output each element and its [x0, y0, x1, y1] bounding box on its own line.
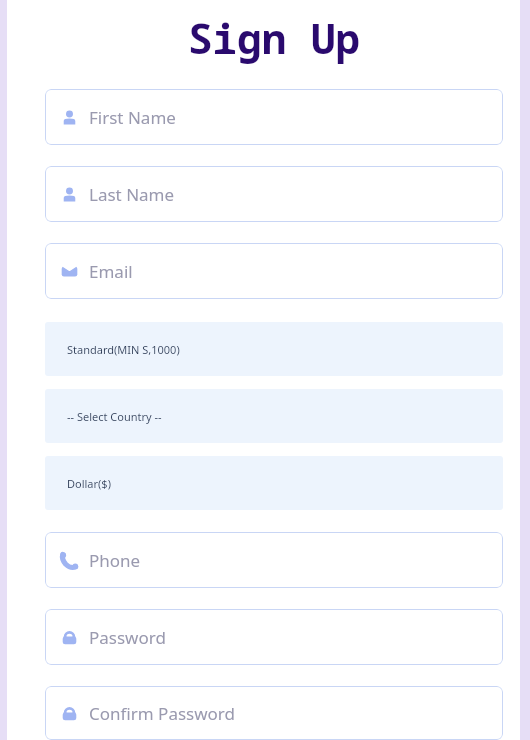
button[interactable]: First name: [45, 89, 503, 145]
button[interactable]: Phone: [45, 532, 503, 588]
other: Phone: [61, 552, 78, 569]
staticText: Email: [89, 260, 133, 283]
staticText: Password: [89, 626, 166, 649]
button[interactable]: Confirm password: [45, 686, 503, 740]
staticText: -- Select Country --: [67, 409, 162, 424]
button[interactable]: -- Select Country --: [45, 389, 503, 443]
staticText: Standard(MIN S,1000): [67, 342, 180, 357]
staticText: Phone: [89, 549, 141, 572]
button[interactable]: Password: [45, 609, 503, 665]
staticText: Sign Up: [45, 10, 503, 66]
other: Last name: [61, 186, 78, 203]
other: First name: [61, 109, 78, 126]
staticText: Dollar($): [67, 476, 111, 491]
other: Password: [61, 629, 78, 646]
button[interactable]: Email: [45, 243, 503, 299]
other: Confirm password: [61, 705, 78, 722]
button[interactable]: Standard(MIN S,1000): [45, 322, 503, 376]
button[interactable]: Last name: [45, 166, 503, 222]
staticText: Confirm Password: [89, 702, 235, 725]
staticText: First Name: [89, 106, 176, 129]
staticText: Last Name: [89, 183, 175, 206]
other: Email: [61, 263, 78, 280]
button[interactable]: Dollar($): [45, 456, 503, 510]
